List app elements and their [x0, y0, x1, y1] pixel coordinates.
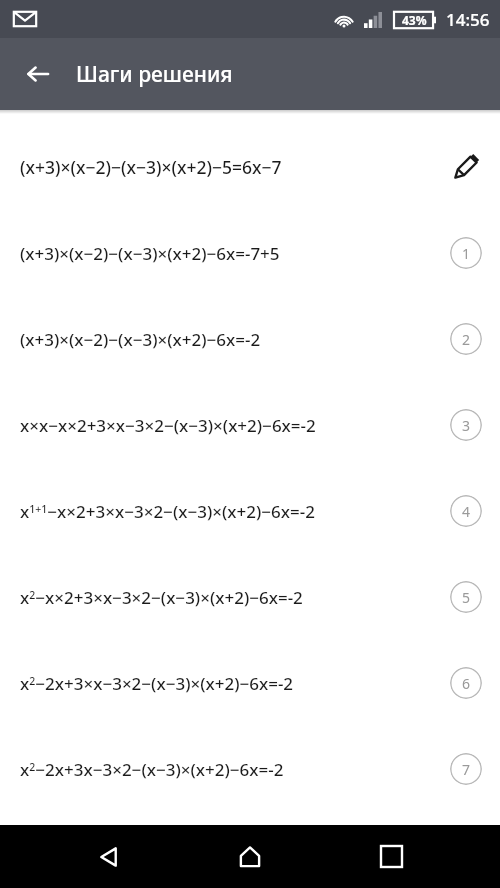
staticText: 7	[462, 760, 471, 779]
button[interactable]: Home	[218, 825, 282, 888]
staticText: x1+1−x×2+3×x−3×2−(x−3)×(x+2)−6x=-2	[20, 500, 315, 523]
button[interactable]: x1+1−x×2+3×x−3×2−(x−3)×(x+2)−6x=-2	[0, 468, 500, 554]
button[interactable]: 6	[450, 667, 482, 699]
staticText: Шаги решения	[76, 60, 233, 89]
staticText: 14:56	[446, 8, 490, 31]
button[interactable]: 5	[450, 581, 482, 613]
button[interactable]: x×x−x×2+3×x−3×2−(x−3)×(x+2)−6x=-2	[0, 382, 500, 468]
button[interactable]: Recent apps	[359, 825, 423, 888]
button[interactable]: Back	[14, 50, 62, 98]
staticText: (x+3)×(x−2)−(x−3)×(x+2)−5=6x−7	[20, 155, 282, 179]
button[interactable]: x2−x×2+3×x−3×2−(x−3)×(x+2)−6x=-2	[0, 554, 500, 640]
staticText: (x+3)×(x−2)−(x−3)×(x+2)−6x=-2	[20, 328, 261, 351]
staticText: 5	[462, 588, 471, 607]
staticText: x×x−x×2+3×x−3×2−(x−3)×(x+2)−6x=-2	[20, 414, 316, 437]
staticText: x2−x×2+3×x−3×2−(x−3)×(x+2)−6x=-2	[20, 586, 303, 609]
button[interactable]: x2−2x+3×x−3×2−(x−3)×(x+2)−6x=-2	[0, 640, 500, 726]
button[interactable]: 1	[450, 237, 482, 269]
button[interactable]: (x+3)×(x−2)−(x−3)×(x+2)−6x=-2	[0, 296, 500, 382]
button[interactable]: 2	[450, 323, 482, 355]
button[interactable]: Edit	[446, 147, 486, 187]
staticText: 6	[462, 674, 471, 693]
staticText: 43%	[402, 12, 427, 28]
staticText: x2−2x+3x−3×2−(x−3)×(x+2)−6x=-2	[20, 758, 284, 781]
button[interactable]: 7	[450, 753, 482, 785]
button[interactable]: Back	[77, 825, 141, 888]
staticText: x2−2x+3×x−3×2−(x−3)×(x+2)−6x=-2	[20, 672, 294, 695]
button[interactable]: 4	[450, 495, 482, 527]
staticText: 3	[462, 416, 471, 435]
button[interactable]: 3	[450, 409, 482, 441]
button[interactable]: (x+3)×(x−2)−(x−3)×(x+2)−5=6x−7	[0, 124, 500, 210]
staticText: 1	[462, 244, 471, 263]
button[interactable]: (x+3)×(x−2)−(x−3)×(x+2)−6x=-7+5	[0, 210, 500, 296]
button[interactable]: x2−2x+3x−3×2−(x−3)×(x+2)−6x=-2	[0, 726, 500, 812]
staticText: 4	[462, 502, 471, 521]
staticText: 2	[462, 330, 471, 349]
staticText: (x+3)×(x−2)−(x−3)×(x+2)−6x=-7+5	[20, 242, 280, 265]
